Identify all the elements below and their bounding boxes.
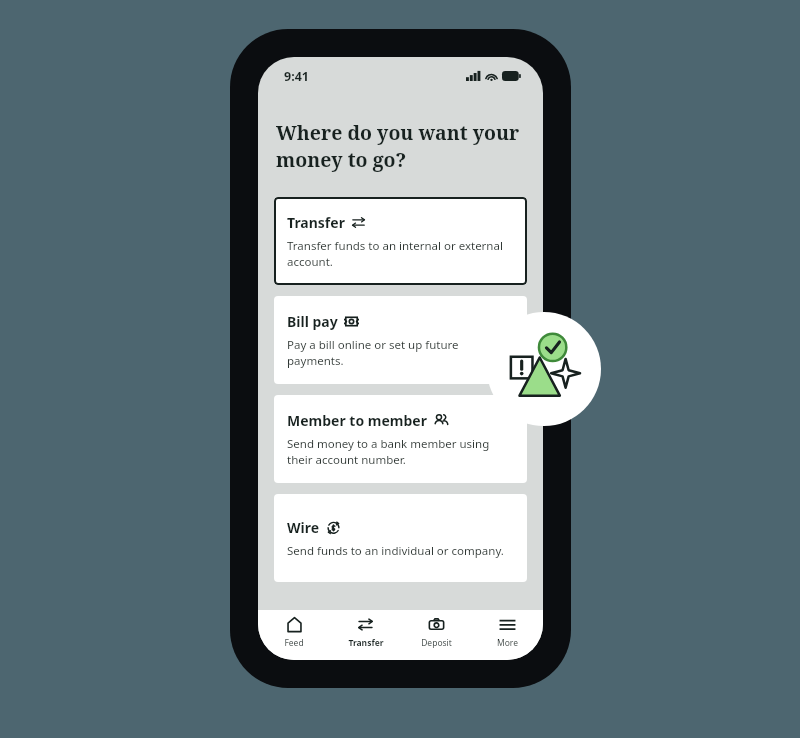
staticText: Member to member bbox=[287, 411, 427, 430]
button[interactable]: More bbox=[472, 610, 543, 660]
staticText: More bbox=[497, 637, 518, 649]
other: More bbox=[499, 616, 516, 633]
other: Transfer bbox=[357, 616, 374, 633]
staticText: Deposit bbox=[421, 637, 452, 649]
button[interactable]: Feed bbox=[258, 610, 330, 660]
staticText: Bill pay bbox=[287, 312, 338, 331]
button[interactable]: Deposit bbox=[401, 610, 472, 660]
staticText: Send funds to an individual or company. bbox=[287, 543, 504, 559]
staticText: 9:41 bbox=[284, 68, 309, 85]
other: Deposit bbox=[428, 616, 445, 633]
button[interactable]: Bill pay bbox=[274, 296, 527, 384]
staticText: Transfer bbox=[287, 213, 345, 232]
staticText: Where do you want your bbox=[276, 119, 520, 146]
staticText: Transfer funds to an internal or externa… bbox=[287, 238, 514, 269]
staticText: Send money to a bank member using their … bbox=[287, 436, 514, 467]
staticText: Transfer bbox=[348, 637, 384, 649]
staticText: Pay a bill online or set up future payme… bbox=[287, 337, 514, 368]
staticText: Wire bbox=[287, 518, 320, 537]
button[interactable]: Transfer bbox=[274, 197, 527, 285]
other: Verified highlight bbox=[487, 312, 601, 426]
button[interactable]: Transfer bbox=[330, 610, 401, 660]
staticText: Feed bbox=[284, 637, 304, 649]
button[interactable]: Member to member bbox=[274, 395, 527, 483]
button[interactable]: Wire bbox=[274, 494, 527, 582]
other: Feed bbox=[286, 616, 303, 633]
staticText: money to go? bbox=[276, 146, 407, 173]
